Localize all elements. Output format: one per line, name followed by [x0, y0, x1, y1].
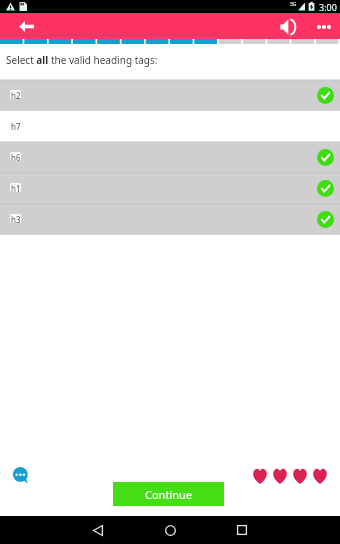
button[interactable]: Recents: [220, 516, 264, 544]
button[interactable]: Home: [148, 516, 192, 544]
staticText: h1: [11, 183, 21, 192]
staticText: 3G: [290, 1, 297, 8]
button[interactable]: More options: [311, 14, 336, 39]
staticText: Select all the valid heading tags:: [6, 53, 158, 67]
staticText: 3:00: [319, 1, 337, 13]
button[interactable]: Sound: [275, 14, 300, 39]
button[interactable]: h2: [0, 80, 340, 111]
button[interactable]: h1: [0, 173, 340, 204]
button[interactable]: Continue: [113, 482, 224, 506]
button[interactable]: Back: [76, 516, 120, 544]
staticText: h6: [11, 152, 21, 161]
button[interactable]: h7: [0, 111, 340, 142]
staticText: Continue: [145, 487, 193, 502]
staticText: h7: [11, 121, 21, 130]
button[interactable]: Discuss: [11, 468, 31, 488]
staticText: h2: [11, 90, 21, 99]
button[interactable]: h6: [0, 142, 340, 173]
button[interactable]: Back: [13, 13, 40, 39]
staticText: h3: [11, 214, 21, 223]
button[interactable]: h3: [0, 204, 340, 235]
